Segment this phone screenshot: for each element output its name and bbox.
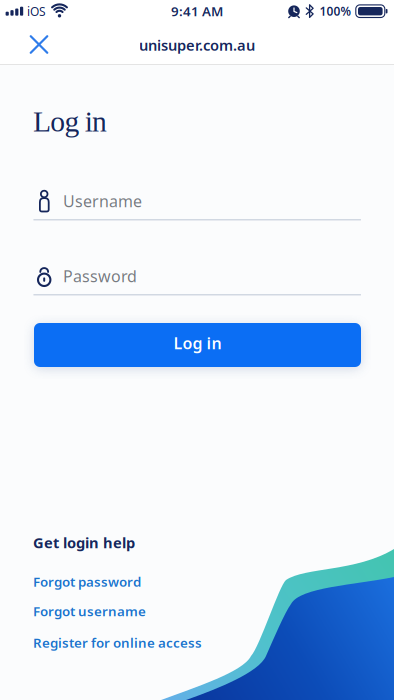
staticText: Forgot password <box>33 573 141 590</box>
button[interactable]: Forgot password <box>33 573 141 590</box>
staticText: unisuper.com.au <box>139 35 255 55</box>
staticText: 9:41 AM <box>171 2 223 20</box>
button[interactable]: Log in <box>34 323 361 367</box>
textField[interactable]: Username <box>33 184 361 220</box>
staticText: Get login help <box>33 533 135 552</box>
button[interactable]: Forgot username <box>33 602 146 620</box>
staticText: Register for online access <box>33 634 202 651</box>
staticText: Forgot username <box>33 602 146 620</box>
button[interactable]: Close <box>21 26 57 62</box>
staticText: Log in <box>33 105 107 138</box>
textField[interactable]: Password <box>33 259 361 295</box>
staticText: iOS <box>27 3 46 19</box>
button[interactable]: Register for online access <box>33 634 202 651</box>
staticText: Username <box>63 190 142 212</box>
staticText: Log in <box>173 332 221 354</box>
staticText: 100% <box>319 3 351 19</box>
staticText: Password <box>63 265 137 287</box>
